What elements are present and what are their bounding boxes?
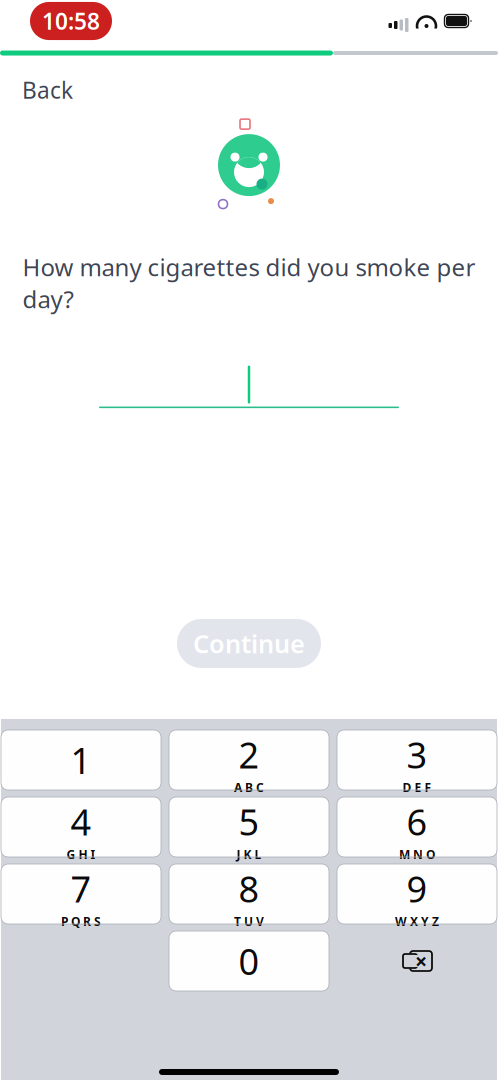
staticText: 0: [238, 937, 259, 985]
button[interactable]: 4: [1, 797, 161, 857]
staticText: ×: [415, 947, 427, 975]
staticText: T U V: [234, 913, 264, 929]
button[interactable]: 2: [169, 730, 329, 790]
button[interactable]: Back: [22, 69, 87, 111]
button[interactable]: 8: [169, 864, 329, 924]
staticText: 10:58: [42, 6, 100, 36]
staticText: 6: [406, 798, 427, 845]
button[interactable]: 7: [1, 864, 161, 924]
button[interactable]: Continue: [177, 619, 321, 668]
staticText: 1: [70, 736, 91, 784]
button[interactable]: 3: [337, 730, 497, 790]
staticText: 5: [238, 798, 259, 845]
staticText: 4: [70, 798, 91, 845]
staticText: Continue: [193, 627, 305, 660]
button[interactable]: Delete: [337, 931, 497, 991]
staticText: 9: [406, 865, 427, 912]
button[interactable]: 0: [169, 931, 329, 991]
button[interactable]: 1: [1, 730, 161, 790]
staticText: D E F: [402, 779, 431, 795]
button[interactable]: 6: [337, 797, 497, 857]
staticText: M N O: [399, 846, 435, 862]
staticText: 7: [70, 865, 91, 912]
staticText: Back: [22, 75, 73, 105]
staticText: 2: [238, 731, 259, 778]
staticText: How many cigarettes did you smoke per da…: [22, 251, 475, 315]
staticText: J K L: [236, 846, 261, 862]
staticText: 3: [406, 731, 427, 778]
button[interactable]: 9: [337, 864, 497, 924]
staticText: 8: [238, 865, 259, 912]
staticText: A B C: [234, 779, 264, 795]
staticText: G H I: [66, 846, 95, 862]
staticText: W X Y Z: [395, 913, 439, 929]
staticText: P Q R S: [61, 913, 101, 929]
button[interactable]: 5: [169, 797, 329, 857]
